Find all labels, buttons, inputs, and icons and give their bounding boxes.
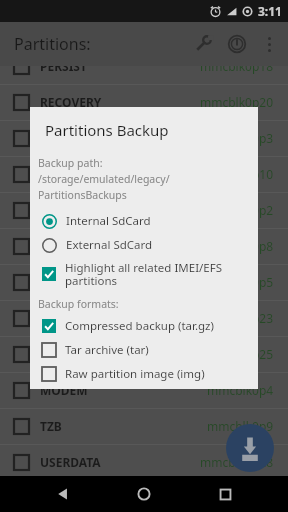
button[interactable]: CACHE bbox=[0, 336, 288, 372]
button[interactable]: MODEM bbox=[0, 372, 288, 408]
button[interactable]: Back bbox=[45, 476, 81, 512]
staticText: SSD bbox=[40, 238, 63, 254]
staticText: mmcblk0p3 bbox=[207, 130, 274, 146]
button[interactable]: Home bbox=[126, 476, 162, 512]
staticText: mmcblk0p5 bbox=[207, 274, 274, 290]
button[interactable]: Internal SdCard bbox=[30, 209, 258, 233]
button[interactable]: SYSTEM bbox=[0, 300, 288, 336]
staticText: PartitionsBackups bbox=[38, 188, 127, 202]
staticText: External SdCard bbox=[66, 237, 153, 253]
button[interactable]: Recent apps bbox=[207, 476, 243, 512]
button[interactable]: TZ bbox=[0, 264, 288, 300]
staticText: 3:11 bbox=[258, 3, 282, 19]
button[interactable]: SBL1 bbox=[0, 156, 288, 192]
button[interactable]: External SdCard bbox=[30, 233, 258, 257]
staticText: /storage/emulated/legacy/ bbox=[38, 172, 170, 186]
staticText: PERSIST bbox=[40, 58, 87, 74]
staticText: Backup formats: bbox=[38, 297, 119, 311]
staticText: RECOVERY bbox=[40, 94, 102, 110]
button[interactable]: Backup selected partitions bbox=[226, 424, 274, 472]
staticText: Raw partition image (img) bbox=[65, 366, 205, 382]
button[interactable]: TZB bbox=[0, 408, 288, 444]
staticText: TZ bbox=[40, 274, 54, 290]
staticText: mmcblk0p23 bbox=[200, 310, 274, 326]
button[interactable]: RPM bbox=[0, 120, 288, 156]
button[interactable]: SEC bbox=[0, 192, 288, 228]
staticText: mmcblk0p25 bbox=[200, 346, 274, 362]
staticText: mmcblk0p9 bbox=[207, 418, 274, 434]
button[interactable]: Compressed backup (tar.gz) bbox=[30, 314, 258, 338]
staticText: RPM bbox=[40, 130, 67, 146]
button[interactable]: SSD bbox=[0, 228, 288, 264]
button[interactable]: PERSIST bbox=[0, 48, 288, 84]
button[interactable]: Highlight all related IMEI/EFS partition… bbox=[30, 257, 258, 291]
staticText: SEC bbox=[40, 202, 62, 218]
staticText: mmcblk0p8 bbox=[207, 238, 274, 254]
staticText: mmcblk0p2 bbox=[207, 202, 274, 218]
staticText: SYSTEM bbox=[40, 310, 86, 326]
staticText: Internal SdCard bbox=[66, 213, 151, 229]
staticText: Backup path: bbox=[38, 156, 103, 170]
button[interactable]: USERDATA bbox=[0, 444, 288, 480]
staticText: Compressed backup (tar.gz) bbox=[65, 318, 214, 334]
button[interactable]: Raw partition image (img) bbox=[30, 362, 258, 386]
staticText: Highlight all related IMEI/EFS partition… bbox=[65, 260, 222, 289]
staticText: Tar archive (tar) bbox=[65, 342, 149, 358]
staticText: TZB bbox=[40, 418, 62, 434]
staticText: USERDATA bbox=[40, 454, 101, 470]
button[interactable]: Tools bbox=[186, 27, 220, 61]
staticText: mmcblk0p10 bbox=[200, 166, 274, 182]
button[interactable]: Info bbox=[220, 27, 254, 61]
staticText: mmcblk0p28 bbox=[200, 454, 274, 470]
button[interactable]: RECOVERY bbox=[0, 84, 288, 120]
button[interactable]: Tar archive (tar) bbox=[30, 338, 258, 362]
staticText: Partitions: bbox=[14, 33, 91, 55]
staticText: mmcblk0p18 bbox=[200, 58, 274, 74]
staticText: mmcblk0p4 bbox=[207, 382, 274, 398]
staticText: SBL1 bbox=[40, 166, 69, 182]
staticText: mmcblk0p20 bbox=[200, 94, 274, 110]
staticText: Partitions Backup bbox=[45, 120, 169, 140]
staticText: CACHE bbox=[40, 346, 80, 362]
button[interactable]: More options bbox=[254, 29, 284, 59]
staticText: MODEM bbox=[40, 382, 88, 398]
